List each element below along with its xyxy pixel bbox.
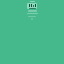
- button[interactable]: Main stat tile: [27, 3, 37, 9]
- button[interactable]: [28, 10, 37, 12]
- button[interactable]: [30, 1, 35, 2]
